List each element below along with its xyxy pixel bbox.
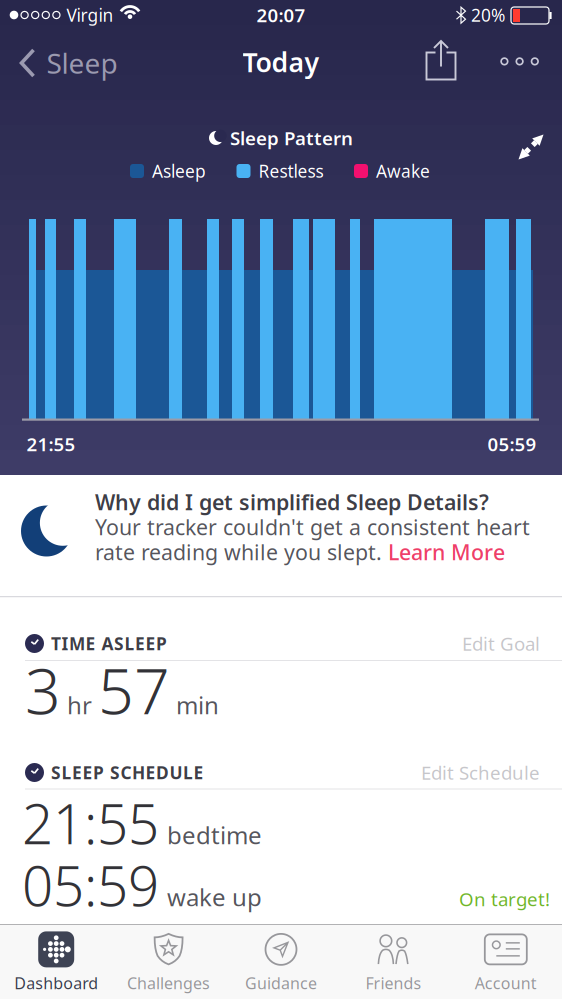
button[interactable]: Learn More: [388, 538, 505, 566]
staticText: 20%: [471, 3, 505, 26]
staticText: Dashboard: [14, 972, 98, 994]
staticText: min: [176, 689, 219, 721]
staticText: 57: [98, 648, 170, 732]
staticText: Challenges: [127, 972, 210, 994]
button[interactable]: Sleep: [8, 38, 117, 88]
staticText: Guidance: [245, 972, 317, 994]
staticText: Restless: [258, 159, 323, 182]
staticText: 21:55: [22, 787, 159, 859]
button[interactable]: Share: [419, 33, 462, 86]
staticText: rate reading while you slept.: [95, 538, 388, 566]
button[interactable]: Expand: [510, 126, 552, 168]
staticText: 3: [25, 648, 61, 732]
staticText: Friends: [365, 972, 421, 994]
staticText: wake up: [167, 881, 262, 913]
staticText: Awake: [376, 159, 430, 182]
staticText: 05:59: [22, 849, 159, 921]
staticText: TIME ASLEEP: [51, 632, 167, 655]
staticText: Edit Schedule: [421, 760, 540, 785]
staticText: Edit Goal: [462, 631, 540, 656]
staticText: Sleep Pattern: [230, 126, 353, 150]
staticText: 21:55: [26, 432, 75, 456]
staticText: 20:07: [256, 3, 305, 27]
button[interactable]: Friends: [337, 925, 450, 999]
button[interactable]: Dashboard: [0, 925, 112, 999]
staticText: Today: [242, 44, 319, 80]
button[interactable]: Guidance: [225, 925, 337, 999]
button[interactable]: Challenges: [112, 925, 225, 999]
staticText: 05:59: [487, 432, 536, 456]
button[interactable]: Edit Schedule: [421, 760, 540, 785]
staticText: hr: [67, 689, 92, 721]
button[interactable]: More: [490, 47, 549, 76]
staticText: Why did I get simplified Sleep Details?: [95, 488, 489, 516]
staticText: SLEEP SCHEDULE: [51, 761, 203, 784]
staticText: Your tracker couldn't get a consistent h…: [95, 513, 530, 541]
staticText: Asleep: [152, 159, 206, 182]
staticText: Learn More: [388, 538, 505, 566]
staticText: bedtime: [167, 819, 262, 851]
staticText: On target!: [459, 887, 550, 911]
staticText: Virgin: [66, 3, 113, 26]
button[interactable]: Edit Goal: [462, 631, 540, 656]
staticText: Account: [475, 972, 537, 994]
button[interactable]: Account: [450, 925, 562, 999]
staticText: Sleep: [46, 44, 117, 82]
